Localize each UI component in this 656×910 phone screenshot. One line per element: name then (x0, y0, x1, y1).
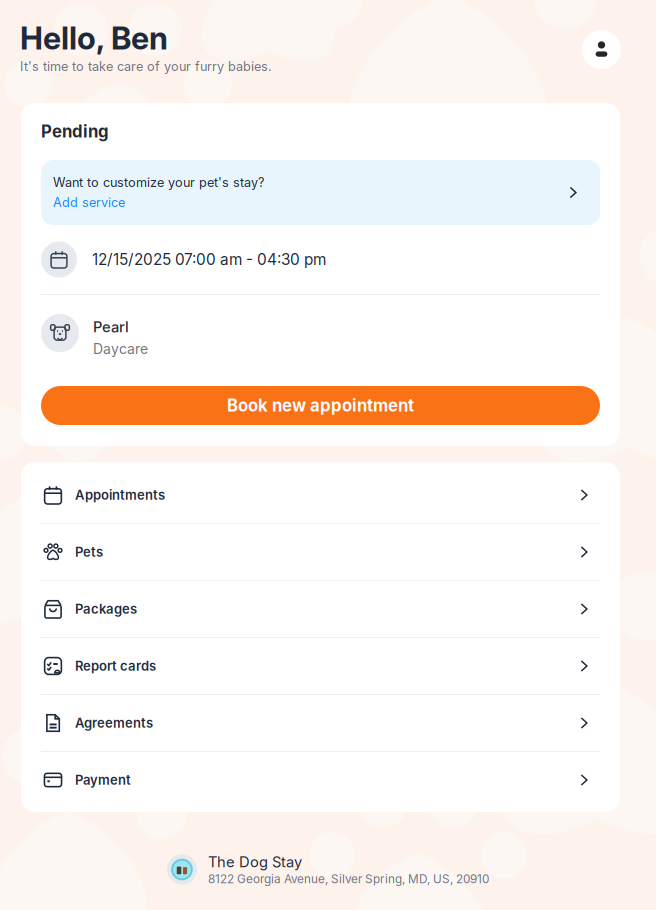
staticText: Book new appointment (227, 395, 414, 416)
button[interactable]: Appointments (21, 467, 620, 523)
staticText: 12/15/2025 07:00 am - 04:30 pm (92, 250, 326, 269)
button[interactable]: Report cards (21, 638, 620, 694)
staticText: It's time to take care of your furry bab… (20, 59, 272, 74)
staticText: Pets (75, 544, 103, 560)
staticText: Agreements (75, 715, 153, 731)
staticText: Hello, Ben (20, 19, 168, 57)
button[interactable]: Payment (21, 752, 620, 808)
staticText: Daycare (93, 340, 148, 357)
button[interactable]: Profile (582, 30, 621, 69)
staticText: Packages (75, 601, 137, 617)
staticText: Want to customize your pet's stay? (53, 175, 264, 190)
staticText: 8122 Georgia Avenue, Silver Spring, MD, … (208, 872, 489, 886)
button[interactable]: Book new appointment (41, 386, 600, 425)
button[interactable]: Packages (21, 581, 620, 637)
button[interactable]: Pets (21, 524, 620, 580)
button[interactable]: Want to customize your pet's stay? (41, 160, 600, 225)
staticText: Report cards (75, 658, 156, 674)
staticText: Appointments (75, 487, 165, 503)
staticText: Payment (75, 772, 131, 788)
staticText: Pending (41, 121, 109, 142)
staticText: The Dog Stay (208, 853, 302, 871)
staticText: Pearl (93, 318, 129, 336)
button[interactable]: Agreements (21, 695, 620, 751)
staticText: Add service (53, 195, 125, 210)
